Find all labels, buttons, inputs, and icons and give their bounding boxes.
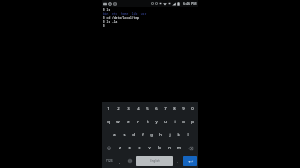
- button[interactable]: e: [123, 116, 133, 128]
- staticText: 6: [155, 106, 158, 112]
- staticText: 5: [146, 106, 149, 112]
- button[interactable]: ?123: [103, 155, 115, 167]
- button[interactable]: m: [174, 142, 184, 154]
- staticText: .: [177, 159, 179, 164]
- button[interactable]: 3: [123, 103, 133, 115]
- staticText: f: [142, 132, 144, 138]
- staticText: a: [113, 132, 116, 138]
- button[interactable]: d: [129, 129, 138, 141]
- button[interactable]: s: [119, 129, 129, 141]
- button[interactable]: Shift: [103, 142, 115, 154]
- staticText: x: [128, 145, 131, 151]
- staticText: o: [182, 119, 185, 125]
- staticText: $ ls: [103, 8, 111, 12]
- button[interactable]: a: [109, 129, 119, 141]
- staticText: q: [107, 119, 110, 125]
- staticText: t: [147, 119, 149, 125]
- button[interactable]: 7: [161, 103, 170, 115]
- staticText: n: [168, 145, 171, 151]
- button[interactable]: b: [154, 142, 164, 154]
- staticText: u: [164, 119, 167, 125]
- staticText: 9: [182, 106, 185, 112]
- button[interactable]: o: [179, 116, 188, 128]
- staticText: 1: [107, 106, 110, 112]
- button[interactable]: c: [134, 142, 144, 154]
- button[interactable]: 6: [152, 103, 161, 115]
- button[interactable]: u: [161, 116, 170, 128]
- staticText: c: [138, 145, 141, 151]
- button[interactable]: w: [113, 116, 123, 128]
- staticText: bin etc home lib usr: [103, 12, 147, 16]
- button[interactable]: n: [164, 142, 174, 154]
- button[interactable]: l: [183, 129, 192, 141]
- staticText: d: [132, 132, 135, 138]
- staticText: r: [137, 119, 139, 125]
- staticText: y: [155, 119, 158, 125]
- button[interactable]: 2: [113, 103, 123, 115]
- staticText: b: [158, 145, 161, 151]
- staticText: English: [150, 159, 160, 163]
- button[interactable]: q: [103, 116, 113, 128]
- button[interactable]: z: [115, 142, 124, 154]
- staticText: j: [169, 132, 171, 138]
- staticText: 4: [137, 106, 140, 112]
- button[interactable]: h: [156, 129, 165, 141]
- staticText: v: [148, 145, 151, 151]
- staticText: s: [123, 132, 126, 138]
- button[interactable]: 5: [143, 103, 152, 115]
- staticText: $ cd /data/local/tmp: [103, 16, 140, 20]
- staticText: z: [119, 145, 121, 151]
- staticText: 6:46 PM: [183, 1, 197, 6]
- staticText: k: [177, 132, 180, 138]
- button[interactable]: Enter: [183, 156, 197, 166]
- button[interactable]: English: [136, 156, 173, 166]
- button[interactable]: 4: [133, 103, 143, 115]
- staticText: i: [174, 119, 176, 125]
- button[interactable]: Backspace: [184, 142, 197, 154]
- staticText: m: [177, 145, 181, 151]
- staticText: ,: [119, 159, 121, 164]
- staticText: $ ls -la: [103, 20, 118, 24]
- staticText: 2: [117, 106, 120, 112]
- button[interactable]: r: [133, 116, 143, 128]
- staticText: e: [127, 119, 130, 125]
- button[interactable]: y: [152, 116, 161, 128]
- staticText: 8: [173, 106, 176, 112]
- button[interactable]: ,: [116, 155, 124, 167]
- button[interactable]: 8: [170, 103, 179, 115]
- button[interactable]: f: [138, 129, 147, 141]
- staticText: w: [116, 119, 120, 125]
- button[interactable]: 9: [179, 103, 188, 115]
- staticText: h: [159, 132, 162, 138]
- button[interactable]: $ ls: [102, 7, 198, 102]
- button[interactable]: g: [147, 129, 156, 141]
- button[interactable]: v: [144, 142, 154, 154]
- button[interactable]: t: [143, 116, 152, 128]
- staticText: 3: [127, 106, 130, 112]
- button[interactable]: Change keyboard language: [125, 155, 135, 167]
- staticText: p: [191, 119, 194, 125]
- button[interactable]: i: [170, 116, 179, 128]
- button[interactable]: .: [174, 155, 182, 167]
- button[interactable]: x: [124, 142, 134, 154]
- staticText: l: [187, 132, 189, 138]
- button[interactable]: 1: [103, 103, 113, 115]
- staticText: 7: [164, 106, 167, 112]
- staticText: ?123: [106, 159, 113, 163]
- staticText: $: [103, 24, 105, 28]
- button[interactable]: p: [188, 116, 197, 128]
- button[interactable]: 0: [188, 103, 197, 115]
- staticText: g: [150, 132, 153, 138]
- button[interactable]: k: [174, 129, 183, 141]
- button[interactable]: j: [165, 129, 174, 141]
- staticText: 0: [191, 106, 194, 112]
